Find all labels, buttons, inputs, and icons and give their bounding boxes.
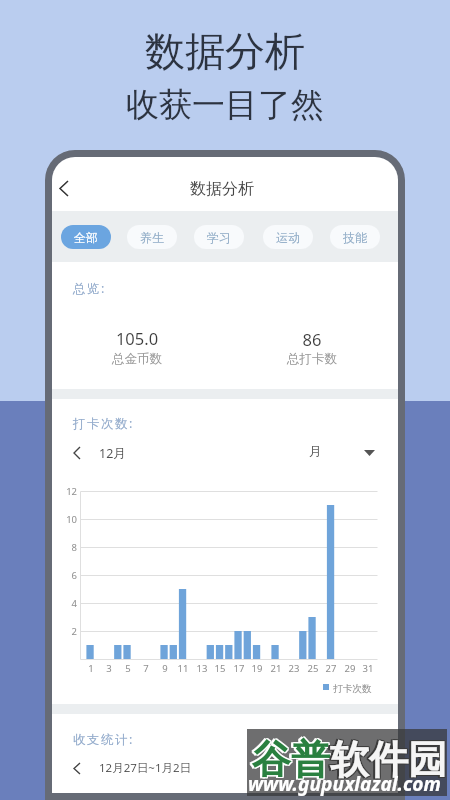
staticText: 6 — [52, 569, 77, 582]
staticText: 1 — [81, 662, 101, 675]
staticText: 软件园 — [331, 736, 448, 785]
staticText: 谷普 — [253, 734, 331, 783]
staticText: 数据分析 — [190, 179, 254, 199]
staticText: 86 — [232, 328, 392, 350]
button[interactable]: Back — [52, 170, 82, 206]
button[interactable]: 全部 — [61, 225, 111, 249]
staticText: 技能 — [343, 230, 367, 245]
staticText: 谷普 — [252, 735, 330, 784]
staticText: 软件园 — [328, 735, 445, 784]
staticText: 23 — [284, 662, 304, 675]
staticText: 8 — [52, 541, 77, 554]
staticText: 5 — [118, 662, 138, 675]
staticText: 养生 — [140, 230, 164, 245]
staticText: 打卡次数 — [333, 683, 372, 695]
button[interactable]: 12月 — [63, 438, 158, 466]
staticText: 总览: — [73, 280, 106, 297]
staticText: 运动 — [276, 230, 300, 245]
staticText: 7 — [136, 662, 156, 675]
staticText: 软件园 — [330, 735, 447, 784]
staticText: 月 — [309, 444, 322, 460]
staticText: 谷普 — [250, 736, 328, 785]
staticText: 软件园 — [331, 734, 448, 783]
staticText: 软件园 — [328, 736, 445, 785]
staticText: 15 — [210, 662, 230, 675]
staticText: 12月27日~1月2日 — [99, 760, 192, 776]
button[interactable]: 技能 — [330, 225, 380, 249]
staticText: 2 — [52, 625, 77, 638]
staticText: 打卡次数: — [73, 415, 134, 432]
staticText: 19 — [247, 662, 267, 675]
staticText: 谷普 — [253, 735, 331, 784]
staticText: 4 — [52, 597, 77, 610]
staticText: 3 — [99, 662, 119, 675]
staticText: 谷普 — [252, 734, 330, 783]
staticText: 17 — [229, 662, 249, 675]
staticText: 10 — [52, 513, 77, 526]
staticText: 12 — [52, 485, 77, 498]
button[interactable]: 学习 — [194, 225, 244, 249]
staticText: 27 — [321, 662, 341, 675]
staticText: 12月 — [99, 445, 126, 462]
staticText: 软件园 — [330, 734, 447, 783]
button[interactable]: 养生 — [127, 225, 177, 249]
staticText: 谷普 — [252, 736, 330, 785]
staticText: 21 — [266, 662, 286, 675]
staticText: 总金币数 — [57, 351, 217, 367]
staticText: 学习 — [207, 230, 231, 245]
button[interactable]: 运动 — [263, 225, 313, 249]
button[interactable]: Select period — [302, 438, 382, 466]
staticText: 总打卡数 — [232, 351, 392, 367]
staticText: 谷普 — [250, 734, 328, 783]
button[interactable]: 12月27日~1月2日 — [63, 754, 253, 782]
staticText: 25 — [303, 662, 323, 675]
staticText: 谷普 — [253, 736, 331, 785]
staticText: 收支统计: — [73, 731, 134, 748]
staticText: www.gupuxlazal.com — [248, 770, 441, 796]
staticText: 软件园 — [328, 734, 445, 783]
staticText: 105.0 — [57, 327, 217, 349]
staticText: 29 — [340, 662, 360, 675]
staticText: 软件园 — [330, 736, 447, 785]
staticText: 31 — [358, 662, 378, 675]
staticText: 数据分析 — [0, 26, 450, 76]
staticText: 13 — [192, 662, 212, 675]
staticText: 收获一目了然 — [0, 84, 450, 126]
staticText: 9 — [155, 662, 175, 675]
staticText: 11 — [173, 662, 193, 675]
staticText: 软件园 — [331, 735, 448, 784]
staticText: 全部 — [74, 230, 98, 245]
staticText: 谷普 — [250, 735, 328, 784]
